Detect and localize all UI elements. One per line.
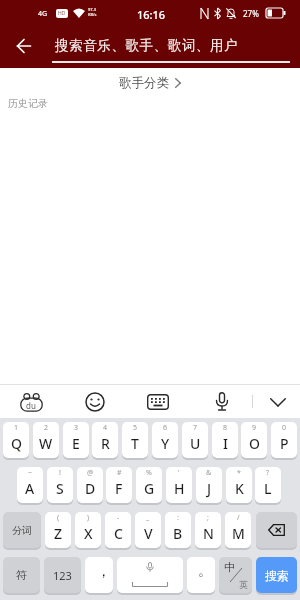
button[interactable]: 9 <box>241 422 267 458</box>
button[interactable] <box>256 512 297 548</box>
staticText: 27% <box>243 8 259 19</box>
button[interactable]: @ <box>77 467 103 503</box>
staticText: HD <box>58 10 66 17</box>
button[interactable]: ' <box>166 467 192 503</box>
button[interactable]: 8 <box>212 422 238 458</box>
button[interactable]: 歌手分类 <box>0 70 300 96</box>
button[interactable]: % <box>136 467 162 503</box>
button[interactable]: - <box>105 512 131 548</box>
staticText: 。 <box>198 562 212 580</box>
staticText: _ <box>146 513 150 523</box>
button[interactable]: _ <box>135 512 161 548</box>
staticText: 符 <box>16 568 27 582</box>
staticText: ! <box>59 468 61 478</box>
staticText: 搜索音乐、歌手、歌词、用户 <box>55 37 239 54</box>
staticText: 4G <box>38 9 48 19</box>
button[interactable]: : <box>165 512 191 548</box>
staticText: Q <box>11 434 22 453</box>
button[interactable]: du <box>18 389 44 415</box>
staticText: 历史记录 <box>8 97 48 110</box>
button[interactable]: 搜索音乐、歌手、歌词、用户 <box>52 28 290 68</box>
staticText: ( <box>57 513 60 523</box>
staticText: 搜索 <box>265 568 289 583</box>
button[interactable]: 2 <box>33 422 59 458</box>
staticText: - <box>117 513 120 523</box>
staticText: H <box>174 479 185 498</box>
staticText: C <box>114 524 123 543</box>
staticText: ~ <box>28 468 33 478</box>
staticText: F <box>115 479 123 498</box>
staticText: I <box>223 434 228 453</box>
button[interactable]: ; <box>195 512 221 548</box>
button[interactable]: ) <box>75 512 101 548</box>
staticText: 分词 <box>12 524 32 537</box>
button[interactable]: 7 <box>182 422 208 458</box>
button[interactable] <box>209 389 235 415</box>
staticText: ' <box>178 468 180 478</box>
button[interactable]: ~ <box>17 467 43 503</box>
staticText: S <box>56 479 64 498</box>
staticText: @ <box>87 468 94 478</box>
staticText: K <box>235 479 244 498</box>
button[interactable] <box>117 557 183 593</box>
staticText: 9 <box>252 423 257 433</box>
button[interactable]: 3 <box>63 422 89 458</box>
button[interactable]: 123 <box>44 557 81 593</box>
button[interactable]: 5 <box>122 422 148 458</box>
button[interactable]: ? <box>255 467 281 503</box>
staticText: 1 <box>14 423 19 433</box>
staticText: : <box>177 513 179 523</box>
button[interactable]: 6 <box>152 422 178 458</box>
staticText: Z <box>54 524 63 543</box>
button[interactable]: 中 <box>219 557 252 593</box>
staticText: 123 <box>53 568 72 583</box>
staticText: 英 <box>239 579 248 590</box>
button[interactable]: 1 <box>3 422 29 458</box>
button[interactable]: 符 <box>3 557 40 593</box>
staticText: P <box>280 434 289 453</box>
staticText: X <box>84 524 93 543</box>
staticText: 2 <box>44 423 49 433</box>
staticText: Y <box>161 434 170 453</box>
staticText: & <box>206 468 212 478</box>
button[interactable]: # <box>106 467 132 503</box>
staticText: 4 <box>103 423 108 433</box>
staticText: U <box>190 434 201 453</box>
staticText: ; <box>207 513 209 523</box>
staticText: 6 <box>163 423 168 433</box>
button[interactable]: ， <box>85 557 113 593</box>
button[interactable]: 分词 <box>3 512 41 548</box>
staticText: 5 <box>133 423 138 433</box>
button[interactable]: & <box>196 467 222 503</box>
button[interactable]: / <box>225 512 251 548</box>
staticText: ) <box>87 513 90 523</box>
button[interactable]: ( <box>45 512 71 548</box>
button[interactable] <box>145 389 171 415</box>
staticText: # <box>117 468 122 478</box>
staticText: V <box>144 524 153 543</box>
staticText: 3 <box>74 423 79 433</box>
button[interactable]: 0 <box>271 422 297 458</box>
staticText: 8 <box>223 423 228 433</box>
staticText: L <box>264 479 272 498</box>
staticText: B <box>173 524 183 543</box>
staticText: * <box>237 468 241 478</box>
staticText: du <box>26 400 36 411</box>
staticText: 16:16 <box>137 7 166 22</box>
button[interactable]: * <box>226 467 252 503</box>
button[interactable]: 。 <box>187 557 215 593</box>
staticText: D <box>85 479 96 498</box>
button[interactable]: 4 <box>92 422 118 458</box>
button[interactable]: 搜索 <box>256 557 297 593</box>
button[interactable] <box>82 389 108 415</box>
button[interactable]: ! <box>47 467 73 503</box>
staticText: 0 <box>282 423 287 433</box>
staticText: ? <box>266 468 270 478</box>
staticText: E <box>72 434 80 453</box>
staticText: ， <box>96 562 111 581</box>
staticText: J <box>207 479 212 498</box>
staticText: W <box>39 434 53 453</box>
staticText: % <box>146 468 152 478</box>
button[interactable] <box>265 389 291 415</box>
button[interactable] <box>8 31 40 61</box>
